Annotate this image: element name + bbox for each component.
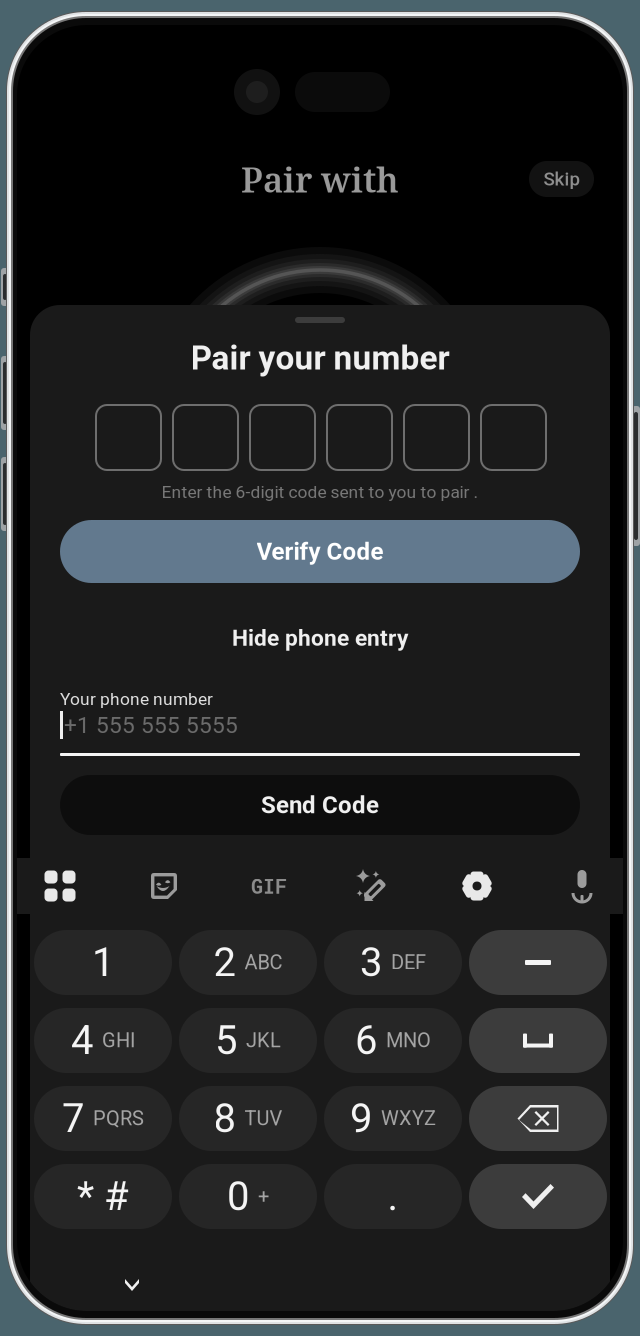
button[interactable]: 6 xyxy=(324,1008,462,1073)
staticText: 0 xyxy=(227,1173,249,1220)
staticText: Pair with xyxy=(241,155,399,203)
button[interactable]: Backspace xyxy=(469,1086,607,1151)
button[interactable]: Verify Code xyxy=(60,520,580,583)
staticText: Your phone number xyxy=(60,689,213,709)
staticText: WXYZ xyxy=(381,1107,436,1130)
staticText: 5 xyxy=(215,1017,237,1064)
button[interactable]: Apps xyxy=(8,858,112,914)
staticText: DEF xyxy=(391,951,426,974)
button[interactable]: GIF xyxy=(217,858,321,914)
button[interactable]: 7 xyxy=(34,1086,172,1151)
staticText: 8 xyxy=(213,1095,235,1142)
staticText: GHI xyxy=(102,1029,135,1052)
staticText: TUV xyxy=(244,1107,282,1130)
staticText: Hide phone entry xyxy=(232,625,408,651)
button[interactable]: 4 xyxy=(34,1008,172,1073)
staticText: 2 xyxy=(213,939,235,986)
staticText: 6 xyxy=(355,1017,377,1064)
button[interactable]: AI edit xyxy=(321,858,425,914)
staticText: Verify Code xyxy=(256,537,383,565)
button[interactable]: Hide phone entry xyxy=(232,623,408,653)
button[interactable]: 1 xyxy=(34,930,172,995)
staticText: . xyxy=(387,1173,398,1220)
button[interactable]: Stickers xyxy=(112,858,216,914)
button[interactable]: Hide keyboard xyxy=(115,1271,149,1297)
button[interactable]: 2 xyxy=(179,930,317,995)
button[interactable]: 9 xyxy=(324,1086,462,1151)
button[interactable]: . xyxy=(324,1164,462,1229)
staticText: ABC xyxy=(244,951,282,974)
button[interactable]: Done xyxy=(469,1164,607,1229)
staticText: 1 xyxy=(92,939,114,986)
button[interactable]: Send Code xyxy=(60,775,580,835)
staticText: PQRS xyxy=(93,1107,144,1130)
staticText: 9 xyxy=(350,1095,372,1142)
button[interactable]: Voice input xyxy=(530,858,634,914)
staticText: + xyxy=(258,1185,269,1208)
button[interactable]: Skip xyxy=(529,161,594,197)
button[interactable]: 5 xyxy=(179,1008,317,1073)
staticText: GIF xyxy=(251,873,287,899)
staticText: Pair your number xyxy=(190,338,449,378)
button[interactable]: Dash xyxy=(469,930,607,995)
staticText: JKL xyxy=(246,1029,281,1052)
staticText: * # xyxy=(77,1173,129,1220)
staticText: Enter the 6-digit code sent to you to pa… xyxy=(161,482,478,502)
staticText: 4 xyxy=(71,1017,93,1064)
staticText: 3 xyxy=(360,939,382,986)
button[interactable]: 3 xyxy=(324,930,462,995)
button[interactable]: Space xyxy=(469,1008,607,1073)
staticText: Skip xyxy=(543,168,579,190)
button[interactable]: 0 xyxy=(179,1164,317,1229)
button[interactable]: * # xyxy=(34,1164,172,1229)
staticText: +1 555 555 5555 xyxy=(64,712,238,739)
button[interactable]: 8 xyxy=(179,1086,317,1151)
button[interactable]: Keyboard settings xyxy=(425,858,529,914)
staticText: 7 xyxy=(62,1095,84,1142)
staticText: Send Code xyxy=(261,791,379,819)
staticText: MNO xyxy=(386,1029,431,1052)
